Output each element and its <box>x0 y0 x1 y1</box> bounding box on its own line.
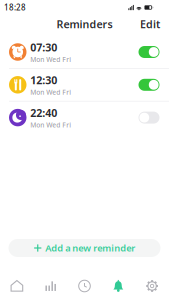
staticText: Mon Wed Fri <box>30 121 71 129</box>
staticText: Mon Wed Fri <box>30 88 71 97</box>
staticText: Edit <box>140 17 160 31</box>
button[interactable]: Home <box>0 273 34 299</box>
button[interactable]: Statistics <box>34 273 68 299</box>
staticText: Add a new reminder <box>45 242 135 254</box>
staticText: 07:30 <box>30 40 57 54</box>
button[interactable]: History <box>68 273 101 299</box>
staticText: Mon Wed Fri <box>30 55 71 64</box>
button[interactable]: Settings <box>135 273 169 299</box>
button[interactable]: 07:30 <box>0 36 169 68</box>
staticText: Reminders <box>56 17 112 31</box>
button[interactable]: 22:40 <box>0 102 169 134</box>
button[interactable]: Reminders <box>101 273 135 299</box>
button[interactable]: Edit <box>131 13 169 35</box>
button[interactable]: 12:30 <box>0 69 169 101</box>
staticText: 18:28 <box>4 2 26 13</box>
staticText: 22:40 <box>30 106 57 120</box>
button[interactable]: Add a new reminder <box>8 239 160 257</box>
staticText: 12:30 <box>30 73 57 87</box>
